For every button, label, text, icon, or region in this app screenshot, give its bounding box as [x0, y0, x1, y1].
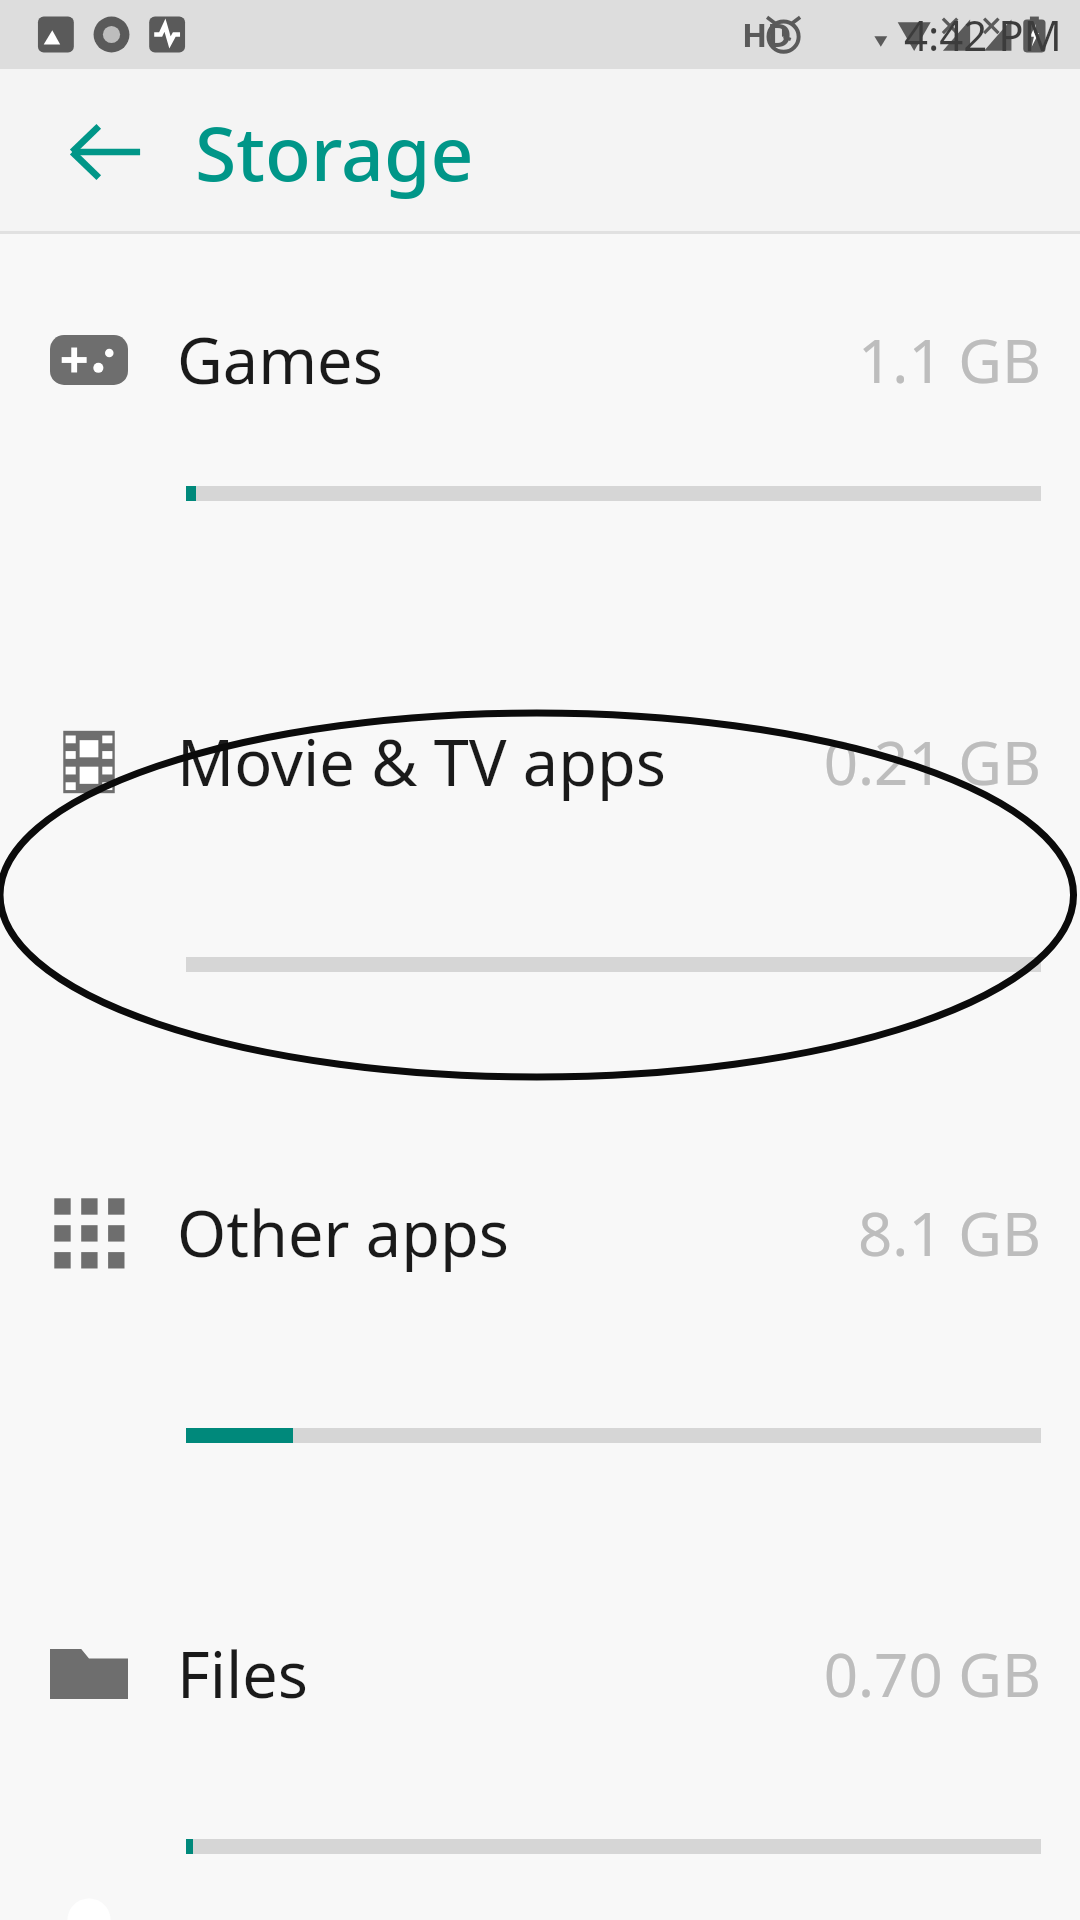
- staticText: 0.70 GB: [823, 1633, 1041, 1715]
- button[interactable]: Games: [0, 234, 1080, 567]
- button[interactable]: Other apps: [0, 1038, 1080, 1509]
- staticText: 4:42 PM: [904, 6, 1062, 63]
- staticText: 0.21 GB: [823, 721, 1041, 803]
- button[interactable]: Back: [33, 80, 177, 224]
- staticText: HD: [742, 12, 792, 57]
- button[interactable]: Movie & TV apps: [0, 567, 1080, 1038]
- staticText: 8.1 GB: [858, 1192, 1041, 1274]
- staticText: Movie & TV apps: [177, 719, 666, 805]
- button[interactable]: Files: [0, 1509, 1080, 1920]
- staticText: Storage: [195, 101, 474, 203]
- staticText: Files: [177, 1631, 308, 1717]
- staticText: 1.1 GB: [858, 319, 1041, 401]
- staticText: Games: [177, 317, 383, 403]
- staticText: Other apps: [177, 1190, 509, 1276]
